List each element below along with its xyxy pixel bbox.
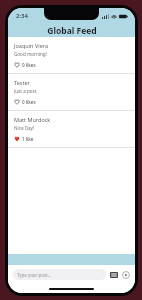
staticText: 2:34 [16, 12, 28, 20]
staticText: 0 likes [22, 62, 36, 68]
button[interactable]: 0 likes [14, 61, 36, 69]
button[interactable]: Add image [109, 270, 118, 279]
staticText: Matt Murdock [14, 116, 51, 123]
staticText: 1 like [22, 136, 34, 142]
staticText: Good morning! [14, 51, 47, 57]
button[interactable]: Type your post... [13, 269, 106, 280]
staticText: Nice Day! [14, 125, 35, 131]
button[interactable]: 0 likes [14, 98, 36, 106]
staticText: 0 likes [22, 99, 36, 105]
staticText: Global Feed [47, 25, 97, 37]
button[interactable]: Joaquin Viera [8, 37, 135, 74]
staticText: Type your post... [17, 272, 52, 278]
staticText: Tester [14, 79, 30, 86]
button[interactable]: Matt Murdock [8, 111, 135, 148]
button[interactable]: Send post [121, 270, 130, 279]
staticText: Just a post [14, 88, 37, 94]
button[interactable]: 1 like [14, 135, 34, 143]
button[interactable]: Tester [8, 74, 135, 111]
staticText: Joaquin Viera [14, 42, 49, 49]
